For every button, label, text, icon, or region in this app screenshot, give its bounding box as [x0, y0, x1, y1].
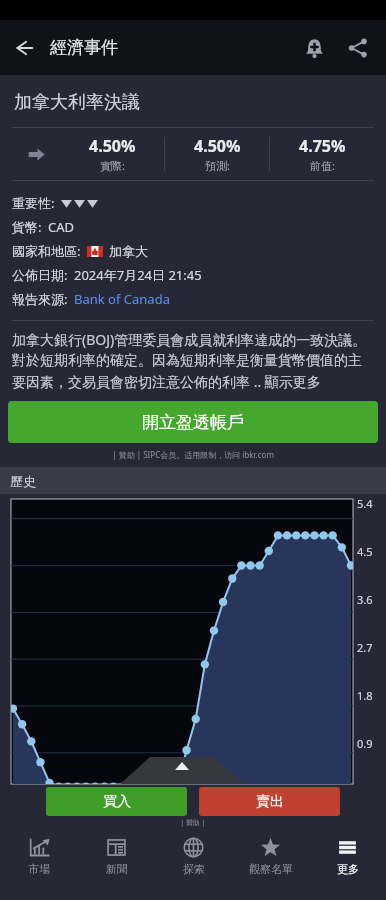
- button[interactable]: 觀察名單: [232, 830, 309, 882]
- staticText: 買入: [103, 793, 131, 811]
- staticText: 4.50%: [89, 135, 136, 157]
- button[interactable]: Add alert: [290, 24, 338, 72]
- staticText: | 贊助 | SIPC会员。适用限制，访问 ibkr.com: [0, 449, 386, 460]
- staticText: 新聞: [106, 862, 128, 876]
- button[interactable]: 賣出: [199, 787, 340, 816]
- button[interactable]: Back: [0, 24, 48, 72]
- staticText: 觀察名單: [249, 862, 293, 876]
- staticText: 開立盈透帳戶: [142, 412, 244, 433]
- staticText: 探索: [183, 862, 205, 876]
- staticText: 實際:: [100, 158, 125, 173]
- staticText: | 贊助 |: [0, 818, 386, 828]
- staticText: 4.75%: [299, 135, 346, 157]
- staticText: 更多: [337, 862, 359, 876]
- staticText: 國家和地區:: [12, 242, 81, 260]
- button[interactable]: 4.50%: [60, 135, 164, 173]
- staticText: 公佈日期:: [12, 266, 68, 284]
- button[interactable]: Share: [338, 24, 378, 72]
- staticText: 歷史: [10, 473, 36, 489]
- staticText: 預測:: [205, 158, 230, 173]
- staticText: 0.9: [357, 736, 373, 751]
- button[interactable]: 4.75%: [270, 135, 374, 173]
- button[interactable]: 更多: [309, 830, 386, 882]
- button[interactable]: 經濟事件: [50, 37, 118, 58]
- staticText: Bank of Canada: [74, 290, 170, 308]
- staticText: 貨幣:: [12, 218, 42, 236]
- button[interactable]: 報告來源:: [12, 290, 170, 308]
- button[interactable]: 市場: [0, 830, 78, 882]
- staticText: 4.5: [357, 544, 373, 559]
- staticText: 4.50%: [194, 135, 241, 157]
- staticText: 加拿大: [109, 243, 148, 259]
- button[interactable]: 新聞: [78, 830, 155, 882]
- staticText: 3.6: [357, 592, 373, 607]
- staticText: 前值:: [310, 158, 335, 173]
- button[interactable]: 4.50%: [165, 135, 269, 173]
- button[interactable]: 探索: [155, 830, 232, 882]
- staticText: 市場: [28, 862, 50, 876]
- button[interactable]: 加拿大銀行(BOJ)管理委員會成員就利率達成的一致決議。對於短期利率的確定。因為…: [12, 330, 374, 391]
- staticText: 報告來源:: [12, 290, 68, 308]
- button[interactable]: 買入: [46, 787, 187, 816]
- staticText: 1.8: [357, 688, 373, 703]
- staticText: CAD: [48, 218, 75, 236]
- staticText: 加拿大利率決議: [14, 91, 140, 114]
- staticText: 賣出: [256, 793, 284, 811]
- staticText: 5.4: [357, 496, 373, 511]
- staticText: 2024年7月24日 21:45: [74, 266, 202, 284]
- staticText: 2.7: [357, 640, 373, 655]
- button[interactable]: 開立盈透帳戶: [8, 401, 378, 443]
- staticText: 重要性:: [12, 194, 55, 212]
